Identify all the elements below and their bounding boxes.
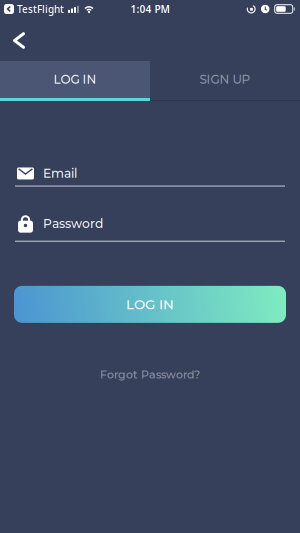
staticText: 1:04 PM [130,2,169,16]
button[interactable]: Email [0,166,300,187]
staticText: Forgot Password? [100,368,200,381]
button[interactable] [0,22,26,56]
staticText: Email [43,166,77,181]
staticText: TestFlight [17,2,64,16]
staticText: Password [43,216,103,231]
staticText: LOG IN [126,296,174,312]
staticText: SIGN UP [199,72,250,87]
button[interactable]: Password [0,215,300,242]
button[interactable]: SIGN UP [150,61,300,101]
button[interactable]: LOG IN [0,286,300,323]
button[interactable]: LOG IN [0,61,150,101]
button[interactable]: Forgot Password? [100,368,200,381]
staticText: LOG IN [53,72,96,87]
